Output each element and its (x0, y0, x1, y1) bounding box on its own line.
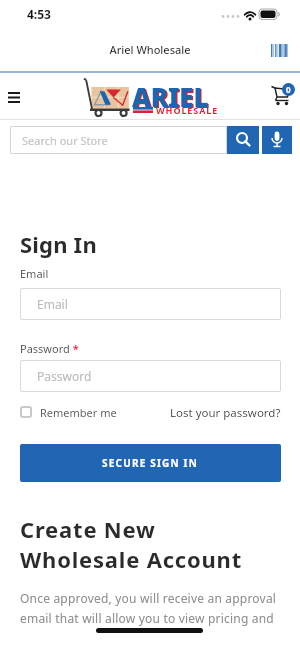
staticText: Search our Store (22, 133, 108, 148)
button[interactable]: Remember me (40, 405, 117, 420)
button[interactable] (20, 406, 32, 418)
button[interactable] (227, 126, 259, 154)
button[interactable] (4, 88, 24, 107)
button[interactable]: Lost your password? (170, 405, 281, 421)
button[interactable] (262, 126, 292, 154)
staticText: Create New Wholesale Account (20, 514, 243, 574)
staticText: Email (37, 296, 68, 312)
staticText: Password (37, 368, 92, 384)
staticText: ARIEL (132, 79, 209, 114)
button[interactable] (271, 44, 288, 57)
button[interactable]: SECURE SIGN IN (20, 444, 281, 482)
staticText: Sign In (20, 229, 97, 259)
staticText: 0 (286, 84, 291, 95)
staticText: Email (20, 266, 49, 281)
staticText: 4:53 (27, 6, 51, 22)
staticText: WHOLESALE (156, 104, 219, 116)
staticText: Password (20, 341, 70, 356)
staticText: SECURE SIGN IN (102, 456, 199, 470)
staticText: Once approved, you will receive an appro… (20, 590, 277, 626)
staticText: * (70, 341, 79, 356)
button[interactable]: 0 (266, 78, 298, 108)
staticText: Ariel Wholesale (0, 42, 300, 57)
